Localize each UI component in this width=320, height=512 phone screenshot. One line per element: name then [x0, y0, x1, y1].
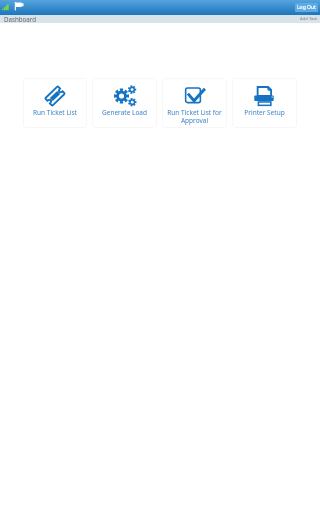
staticText: Dashboard [4, 15, 37, 23]
other: Notification flag [14, 1, 25, 12]
button[interactable]: Run Ticket List [23, 78, 87, 128]
staticText: Run Ticket List for Approval [162, 108, 227, 125]
staticText: Run Ticket List [33, 108, 77, 117]
staticText: Printer Setup [244, 108, 285, 117]
staticText: Generate Load [102, 108, 147, 117]
button[interactable]: Printer Setup [232, 78, 297, 128]
button[interactable]: Log Out [295, 3, 318, 12]
staticText: Add Task [300, 16, 318, 22]
button[interactable]: Add Task [300, 16, 318, 22]
staticText: Log Out [297, 4, 316, 11]
button[interactable]: Generate Load [92, 78, 157, 128]
button[interactable]: Run Ticket List for Approval [162, 78, 227, 128]
